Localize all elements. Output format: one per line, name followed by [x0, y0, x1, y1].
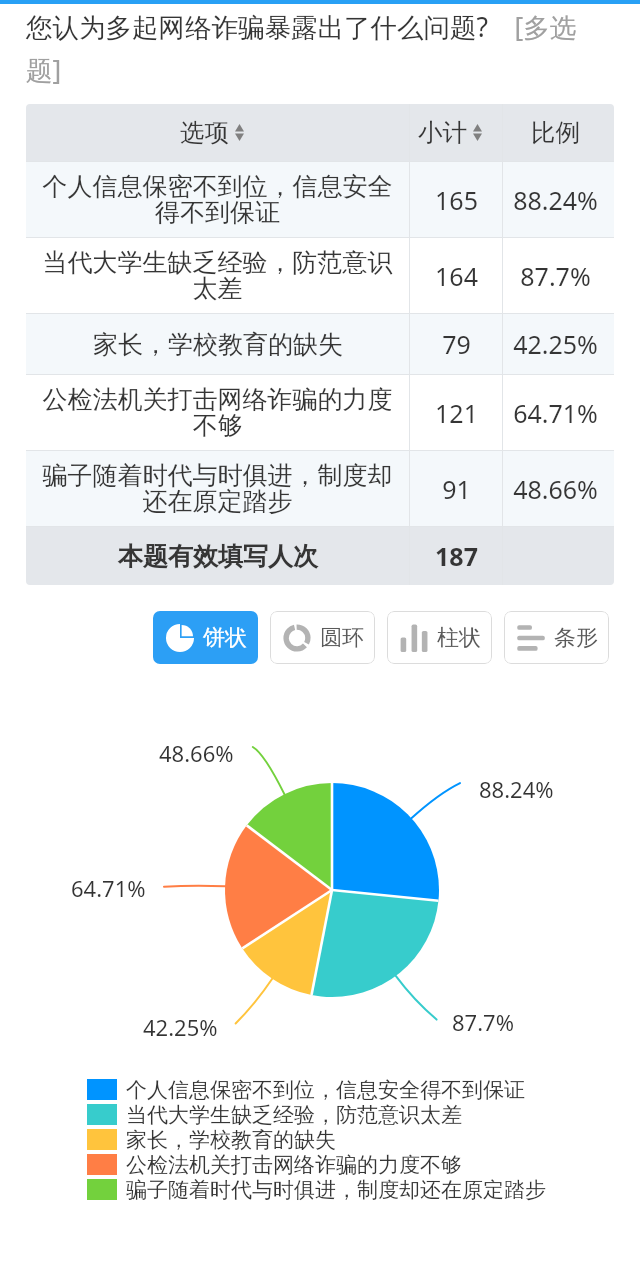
- staticText: 骗子随着时代与时俱进，制度却还在原定踏步: [126, 1177, 546, 1202]
- staticText: 165: [435, 183, 478, 217]
- staticText: 当代大学生缺乏经验，防范意识太差: [32, 247, 403, 305]
- staticText: 48.66%: [159, 738, 234, 768]
- staticText: 79: [442, 327, 471, 361]
- staticText: 家长，学校教育的缺失: [126, 1127, 336, 1152]
- button[interactable]: 圆环: [270, 611, 375, 664]
- staticText: 87.7%: [520, 259, 591, 293]
- staticText: 88.24%: [513, 183, 598, 217]
- staticText: 121: [435, 396, 478, 430]
- staticText: 42.25%: [143, 1012, 218, 1042]
- staticText: 家长，学校教育的缺失: [93, 329, 343, 360]
- staticText: 条形: [554, 624, 598, 652]
- staticText: 当代大学生缺乏经验，防范意识太差: [126, 1102, 462, 1127]
- staticText: 64.71%: [71, 873, 146, 903]
- staticText: 187: [435, 539, 478, 573]
- staticText: 个人信息保密不到位，信息安全得不到保证: [126, 1077, 525, 1102]
- staticText: 164: [435, 259, 478, 293]
- staticText: 比例: [531, 117, 580, 148]
- staticText: 91: [442, 472, 471, 506]
- staticText: 公检法机关打击网络诈骗的力度不够: [32, 384, 403, 442]
- button[interactable]: 饼状: [153, 611, 258, 664]
- staticText: 88.24%: [479, 774, 554, 804]
- staticText: 柱状: [437, 624, 481, 652]
- button[interactable]: 条形: [504, 611, 609, 664]
- button[interactable]: 柱状: [387, 611, 492, 664]
- staticText: 48.66%: [513, 472, 598, 506]
- staticText: 小计: [418, 117, 467, 148]
- staticText: 饼状: [203, 624, 247, 652]
- staticText: 42.25%: [513, 327, 598, 361]
- staticText: 圆环: [320, 624, 364, 652]
- staticText: 本题有效填写人次: [118, 541, 318, 572]
- staticText: 个人信息保密不到位，信息安全得不到保证: [32, 171, 403, 229]
- staticText: 87.7%: [452, 1007, 514, 1037]
- staticText: 选项: [180, 117, 229, 148]
- staticText: 骗子随着时代与时俱进，制度却还在原定踏步: [32, 460, 403, 518]
- staticText: 公检法机关打击网络诈骗的力度不够: [126, 1152, 462, 1177]
- staticText: 64.71%: [513, 396, 598, 430]
- staticText: 您认为多起网络诈骗暴露出了什么问题? [多选题]: [26, 9, 608, 88]
